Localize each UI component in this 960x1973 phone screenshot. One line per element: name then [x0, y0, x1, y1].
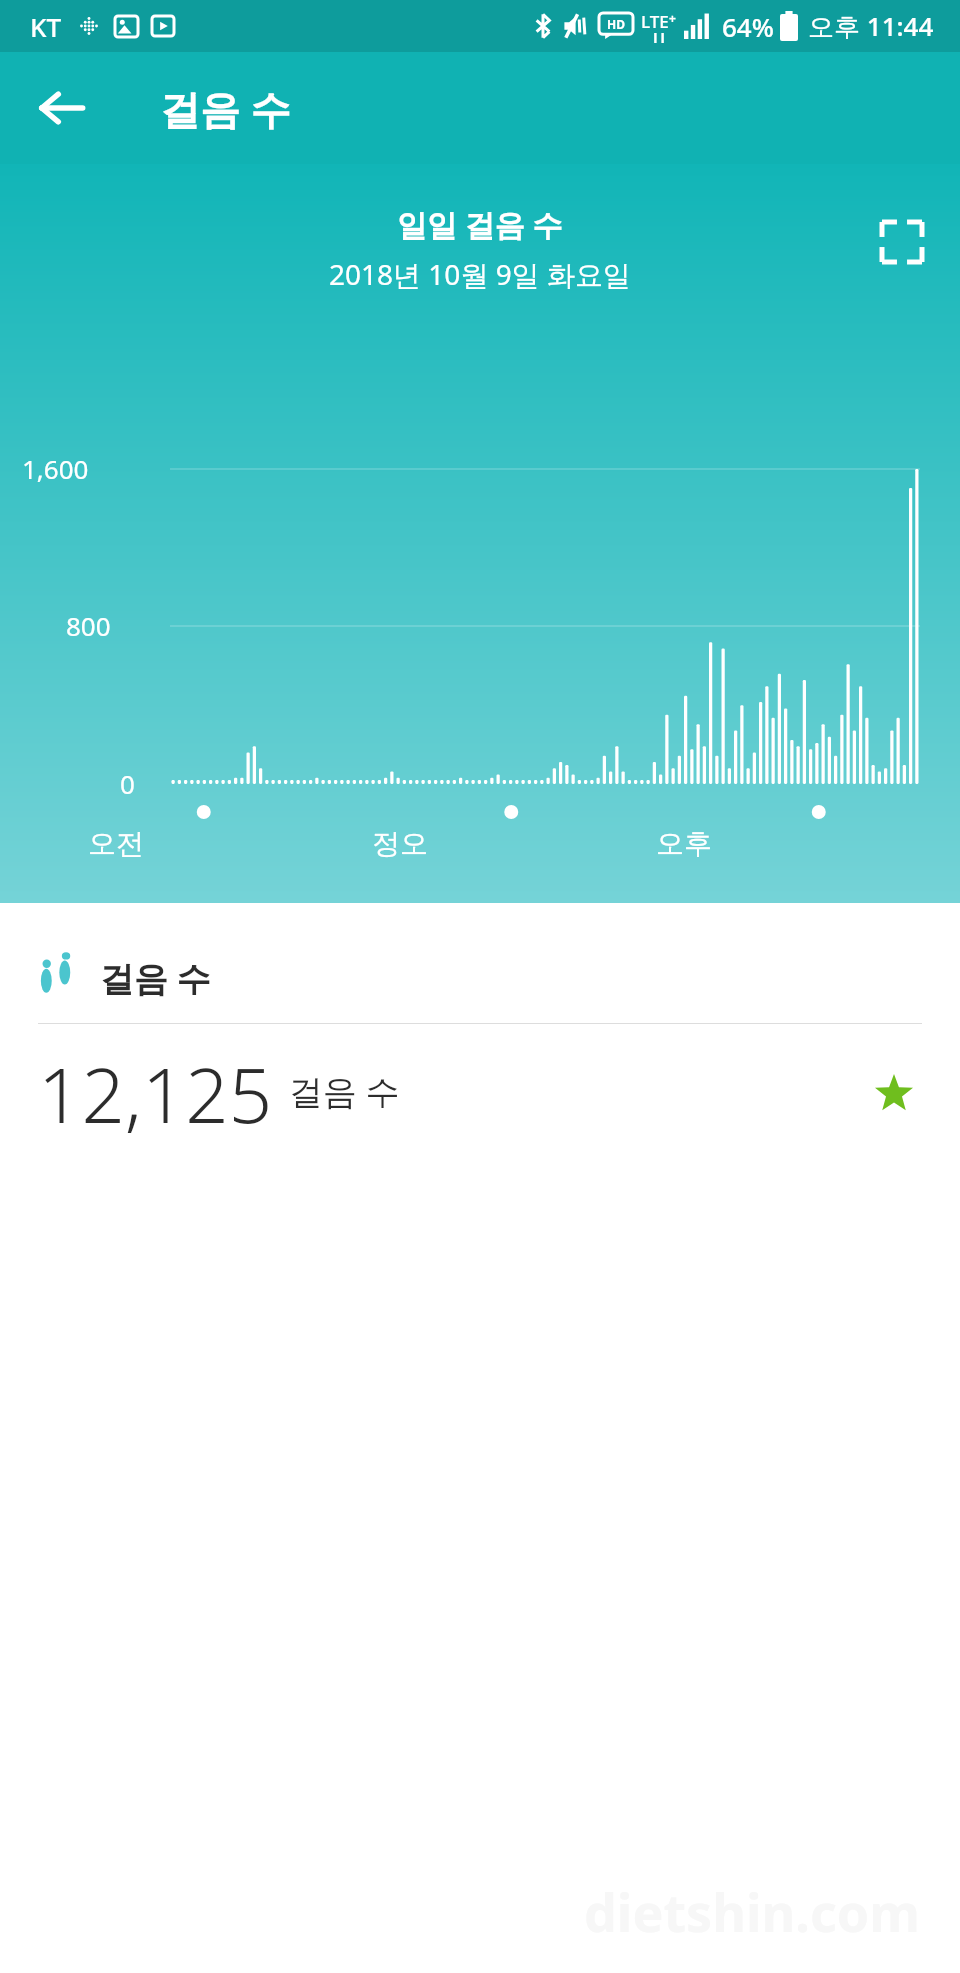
- button[interactable]: 걸음 수: [0, 903, 960, 1146]
- button[interactable]: Expand chart: [866, 206, 938, 278]
- staticText: LTE: [641, 10, 669, 33]
- staticText: +: [669, 10, 676, 26]
- staticText: 오전: [88, 826, 144, 861]
- staticText: 걸음 수: [289, 1068, 400, 1114]
- staticText: 일일 걸음 수: [397, 204, 563, 245]
- staticText: 정오: [372, 826, 428, 861]
- staticText: 오후: [656, 826, 712, 861]
- button[interactable]: Back: [26, 72, 98, 144]
- button[interactable]: Favorite: [862, 1062, 926, 1126]
- staticText: 걸음 수: [100, 955, 211, 1001]
- staticText: 2018년 10월 9일 화요일: [329, 255, 631, 293]
- staticText: 1,600: [22, 451, 89, 486]
- staticText: 0: [120, 766, 135, 801]
- staticText: dietshin.com: [584, 1876, 920, 1947]
- staticText: 걸음 수: [160, 81, 291, 136]
- staticText: 64%: [722, 9, 774, 44]
- staticText: 12,125: [38, 1042, 273, 1146]
- staticText: 800: [66, 608, 111, 643]
- staticText: HD: [607, 16, 625, 32]
- staticText: KT: [30, 9, 62, 44]
- staticText: 오후 11:44: [808, 8, 934, 44]
